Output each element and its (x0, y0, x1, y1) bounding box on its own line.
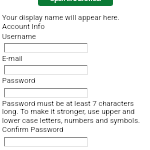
button[interactable]: Username (4, 43, 88, 53)
staticText: Username (2, 32, 37, 41)
staticText: Account Info (2, 22, 45, 31)
staticText: Confirm Password (2, 125, 64, 134)
staticText: E-mail (2, 54, 23, 63)
staticText: Your display name will appear here. (2, 13, 120, 22)
staticText: Open in (50, 0, 72, 3)
button[interactable]: E-mail (4, 65, 88, 75)
button[interactable]: Password (4, 88, 88, 98)
staticText: Password (2, 76, 36, 85)
staticText: Password must be at least 7 characters (2, 99, 134, 108)
staticText: long. To make it stronger, use upper and (2, 107, 135, 116)
staticText: Browser (78, 0, 102, 3)
button[interactable]: Confirm Password (4, 137, 88, 147)
button[interactable]: Open in app (38, 0, 113, 6)
staticText: lower case letters, numbers and symbols. (2, 116, 141, 125)
